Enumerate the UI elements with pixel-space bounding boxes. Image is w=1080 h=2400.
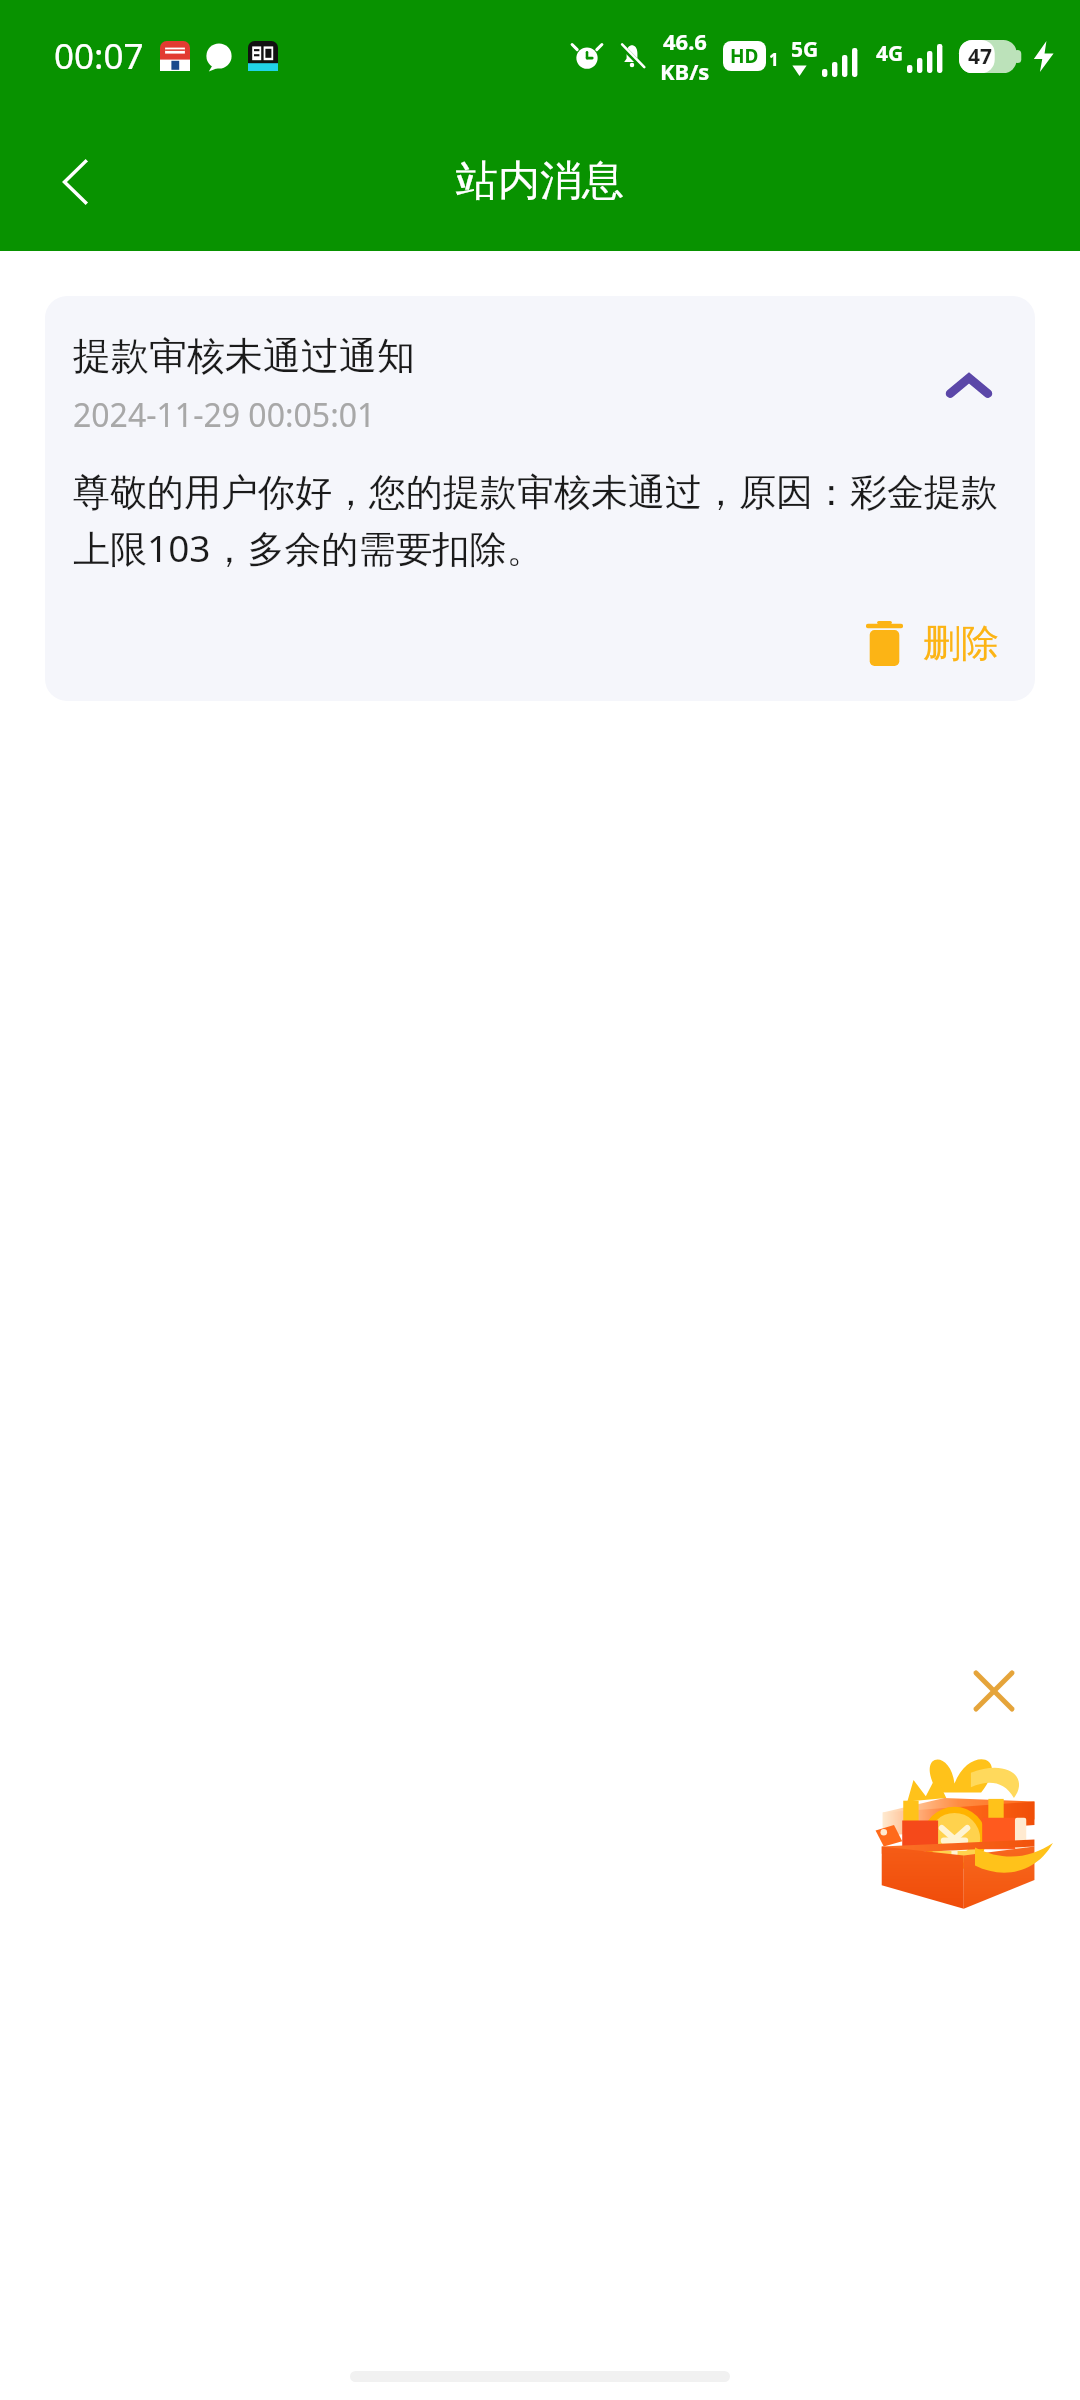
button[interactable]: 删除 bbox=[858, 613, 1007, 673]
staticText: 尊敬的用户你好，您的提款审核未通过，原因：彩金提款上限103，多余的需要扣除。 bbox=[73, 469, 1007, 573]
button[interactable]: Collapse bbox=[931, 347, 1007, 423]
staticText: 4G bbox=[876, 39, 904, 68]
staticText: 2024-11-29 00:05:01 bbox=[73, 393, 376, 437]
staticText: 46.6 bbox=[663, 26, 707, 56]
staticText: 删除 bbox=[923, 619, 999, 667]
staticText: HD bbox=[730, 43, 759, 69]
button[interactable]: 提款审核未通过通知 bbox=[45, 296, 1035, 701]
staticText: 站内消息 bbox=[456, 155, 624, 208]
staticText: 1 bbox=[769, 48, 779, 71]
staticText: 00:07 bbox=[54, 32, 144, 80]
staticText: 47 bbox=[968, 42, 993, 71]
staticText: 5G bbox=[791, 35, 819, 64]
button[interactable]: Back bbox=[28, 134, 124, 230]
button[interactable]: Promotion gift bbox=[852, 1735, 1057, 1915]
button[interactable]: Close bbox=[958, 1655, 1030, 1727]
staticText: KB/s bbox=[660, 56, 710, 86]
staticText: 提款审核未通过通知 bbox=[73, 332, 415, 380]
